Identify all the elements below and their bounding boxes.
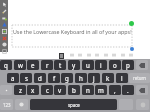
button[interactable]: format0	[70, 53, 74, 57]
button[interactable]: i	[95, 60, 107, 70]
staticText: g	[65, 74, 69, 82]
button[interactable]: tool5	[0, 35, 8, 41]
button[interactable]: tool6	[0, 41, 8, 47]
staticText: o	[113, 61, 117, 69]
button[interactable]: y	[68, 60, 80, 70]
button[interactable]: n	[82, 85, 94, 95]
staticText: v	[58, 86, 62, 94]
button[interactable]: z	[14, 85, 26, 95]
button[interactable]: h	[75, 73, 87, 83]
button[interactable]: m	[95, 85, 107, 95]
button[interactable]: c	[41, 85, 53, 95]
staticText: m	[98, 86, 104, 94]
button[interactable]: Delete	[136, 85, 148, 95]
button[interactable]: o	[109, 60, 121, 70]
button[interactable]: .	[122, 85, 134, 95]
staticText: b	[72, 86, 76, 94]
button[interactable]: q	[0, 60, 12, 70]
button[interactable]: x	[27, 85, 39, 95]
button[interactable]: l	[116, 73, 128, 83]
button[interactable]: return	[129, 73, 150, 83]
button[interactable]: b	[68, 85, 80, 95]
staticText: x	[31, 86, 35, 94]
button[interactable]: tool1	[0, 8, 8, 14]
staticText: d	[38, 74, 42, 82]
button[interactable]: Backspace	[136, 60, 148, 70]
staticText: p	[126, 61, 130, 69]
button[interactable]: ,	[109, 85, 121, 95]
staticText: y	[72, 61, 76, 69]
button[interactable]: a	[7, 73, 19, 83]
button[interactable]: format5	[112, 53, 116, 57]
staticText: s	[25, 74, 28, 82]
staticText: h	[79, 74, 83, 82]
staticText: n	[86, 86, 90, 94]
staticText: u	[86, 61, 90, 69]
button[interactable]: s	[20, 73, 32, 83]
staticText: k	[106, 74, 110, 82]
staticText: t	[59, 61, 62, 69]
button[interactable]: e	[27, 60, 39, 70]
button[interactable]: format2	[87, 53, 91, 57]
staticText: i	[100, 61, 102, 69]
button[interactable]: tool3	[0, 21, 8, 27]
button[interactable]: space	[30, 99, 117, 110]
staticText: .	[127, 86, 129, 94]
staticText: j	[93, 74, 95, 82]
button[interactable]: 123	[0, 99, 13, 110]
button[interactable]: tool2	[0, 15, 8, 21]
button[interactable]: w	[14, 60, 26, 70]
staticText: w	[18, 61, 23, 69]
button[interactable]: format6	[121, 53, 125, 57]
button[interactable]: t	[54, 60, 66, 70]
staticText: e	[31, 61, 35, 69]
button[interactable]: Language	[15, 99, 28, 110]
button[interactable]: k	[102, 73, 114, 83]
button[interactable]: Text style	[59, 53, 64, 59]
button[interactable]: f	[48, 73, 60, 83]
staticText: return	[133, 75, 147, 81]
button[interactable]: tool4	[0, 28, 8, 34]
button[interactable]: format4	[104, 53, 108, 57]
button[interactable]: g	[61, 73, 73, 83]
button[interactable]: d	[34, 73, 46, 83]
staticText: c	[46, 86, 49, 94]
button[interactable]: v	[54, 85, 66, 95]
button[interactable]: j	[88, 73, 100, 83]
staticText: ,	[114, 86, 116, 94]
staticText: r	[46, 61, 49, 69]
staticText: 123	[3, 102, 11, 108]
button[interactable]: format7	[129, 53, 133, 57]
button[interactable]: Shift	[0, 85, 12, 95]
staticText: l	[121, 74, 123, 82]
staticText: Use the Lowercase Keyboard in all of you…	[13, 28, 132, 35]
staticText: f	[53, 74, 56, 82]
button[interactable]: format3	[95, 53, 99, 57]
staticText: z	[19, 86, 22, 94]
staticText: space	[68, 102, 80, 108]
button[interactable]: p	[122, 60, 134, 70]
button[interactable]: tool0	[0, 1, 8, 7]
button[interactable]: r	[41, 60, 53, 70]
button[interactable]: u	[82, 60, 94, 70]
button[interactable]: Emoji	[136, 99, 149, 110]
staticText: a	[11, 74, 15, 82]
button[interactable]: format1	[78, 53, 82, 57]
staticText: q	[4, 61, 8, 69]
button[interactable]: tool7	[0, 48, 8, 54]
